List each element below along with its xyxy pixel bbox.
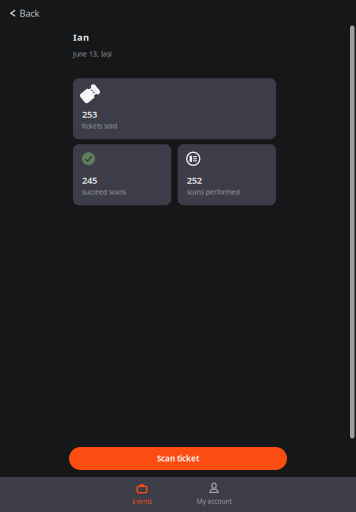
staticText: June 13, Iași (73, 49, 112, 58)
button[interactable]: Events (106, 477, 178, 512)
staticText: Scan ticket (157, 453, 199, 464)
staticText: My account (196, 497, 231, 506)
staticText: tickets sold (82, 121, 117, 130)
staticText: Back (19, 7, 39, 19)
staticText: Ian (73, 31, 89, 43)
staticText: succeed scans (82, 187, 126, 196)
staticText: scans performed (187, 187, 240, 196)
staticText: 253 (82, 108, 97, 120)
button[interactable]: My account (178, 477, 250, 512)
staticText: 245 (82, 174, 97, 186)
button[interactable]: Back (0, 0, 49, 26)
staticText: Events (132, 497, 152, 506)
staticText: 252 (187, 174, 202, 186)
button[interactable]: Scan ticket (69, 447, 287, 470)
